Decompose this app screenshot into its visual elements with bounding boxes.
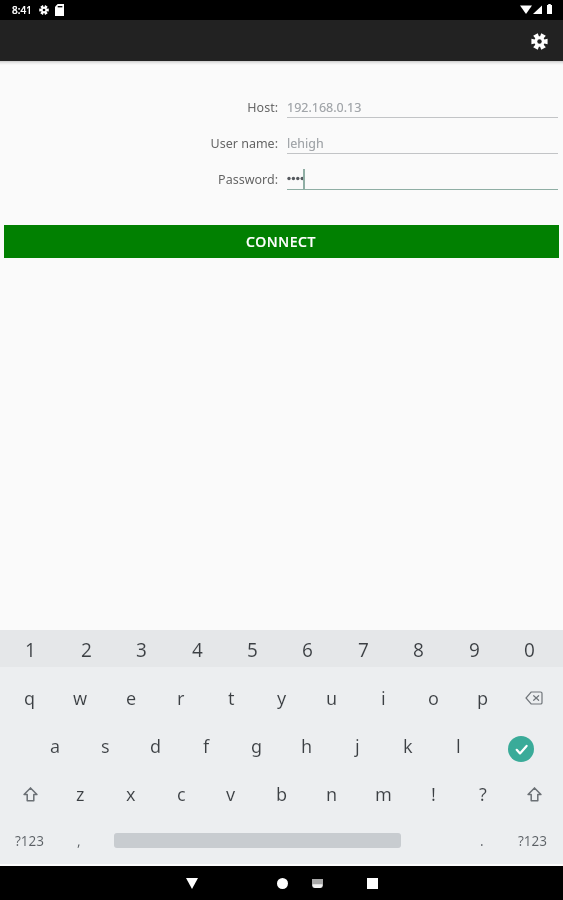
button[interactable]: 0	[502, 631, 557, 668]
button[interactable]: !	[408, 770, 458, 818]
button[interactable]: Back	[177, 866, 207, 900]
button[interactable]: j	[332, 722, 382, 770]
staticText: 9	[469, 637, 480, 663]
button[interactable]: Enter	[482, 725, 559, 773]
button[interactable]: y	[257, 674, 307, 722]
staticText: Password:	[0, 171, 278, 188]
staticText: ?123	[15, 832, 45, 850]
button[interactable]: ?123	[505, 818, 561, 864]
staticText: g	[251, 734, 263, 759]
button[interactable]: ?	[458, 770, 508, 818]
staticText: c	[177, 782, 186, 807]
button[interactable]: h	[282, 722, 332, 770]
button[interactable]: 5	[225, 631, 280, 668]
button[interactable]: k	[383, 722, 433, 770]
button[interactable]: u	[307, 674, 357, 722]
button[interactable]: a	[30, 722, 80, 770]
staticText: i	[381, 686, 386, 711]
staticText: ?	[479, 782, 487, 807]
staticText: h	[301, 734, 313, 759]
button[interactable]: p	[458, 674, 508, 722]
button[interactable]: z	[55, 770, 105, 818]
button[interactable]: Shift	[509, 770, 559, 818]
button[interactable]: 9	[447, 631, 502, 668]
staticText: f	[203, 734, 210, 759]
staticText: s	[101, 734, 110, 759]
staticText: r	[177, 686, 185, 711]
staticText: b	[276, 782, 288, 807]
button[interactable]: o	[408, 674, 458, 722]
button[interactable]: Space	[112, 817, 402, 863]
button[interactable]: Hide keyboard	[302, 866, 332, 900]
staticText: t	[228, 686, 235, 711]
staticText: ?123	[518, 832, 548, 850]
button[interactable]: Recents	[357, 866, 387, 900]
staticText: p	[477, 686, 489, 711]
button[interactable]: l	[433, 722, 483, 770]
staticText: 1	[25, 637, 36, 663]
staticText: z	[76, 782, 85, 807]
button[interactable]: t	[206, 674, 256, 722]
button[interactable]: CONNECT	[4, 225, 559, 258]
staticText: 3	[136, 637, 147, 663]
staticText: Host:	[0, 99, 278, 116]
button[interactable]: 8	[391, 631, 446, 668]
staticText: q	[24, 686, 36, 711]
staticText: e	[126, 686, 137, 711]
staticText: 4	[192, 637, 203, 663]
staticText: CONNECT	[246, 232, 317, 251]
staticText: a	[50, 734, 61, 759]
button[interactable]: ?123	[2, 818, 58, 864]
staticText: m	[375, 782, 392, 807]
staticText: d	[150, 734, 162, 759]
staticText: User name:	[0, 135, 278, 152]
staticText: 2	[81, 637, 92, 663]
staticText: 192.168.0.13	[287, 99, 362, 116]
button[interactable]: 7	[336, 631, 391, 668]
button[interactable]: 4	[170, 631, 225, 668]
button[interactable]: Shift	[5, 770, 55, 818]
button[interactable]: m	[358, 770, 408, 818]
staticText: .	[480, 832, 484, 850]
button[interactable]: Home	[267, 866, 297, 900]
button[interactable]: r	[156, 674, 206, 722]
staticText: k	[403, 734, 413, 759]
staticText: u	[326, 686, 338, 711]
staticText: n	[326, 782, 338, 807]
staticText: j	[355, 734, 360, 759]
button[interactable]: i	[358, 674, 408, 722]
button[interactable]: d	[131, 722, 181, 770]
button[interactable]: w	[55, 674, 105, 722]
button[interactable]: .	[462, 818, 502, 864]
button[interactable]: s	[80, 722, 130, 770]
button[interactable]: Backspace	[509, 674, 559, 722]
button[interactable]: c	[156, 770, 206, 818]
staticText: x	[126, 782, 136, 807]
staticText: 8:41	[12, 3, 32, 17]
staticText: 7	[358, 637, 369, 663]
button[interactable]: x	[106, 770, 156, 818]
staticText: 0	[524, 637, 535, 663]
staticText: l	[456, 734, 461, 759]
staticText: !	[431, 782, 436, 807]
button[interactable]: 2	[59, 631, 114, 668]
button[interactable]: e	[106, 674, 156, 722]
button[interactable]: 6	[280, 631, 335, 668]
staticText: v	[226, 782, 236, 807]
button[interactable]: b	[257, 770, 307, 818]
button[interactable]: q	[5, 674, 55, 722]
button[interactable]: n	[307, 770, 357, 818]
staticText: w	[73, 686, 88, 711]
button[interactable]: 1	[3, 631, 58, 668]
button[interactable]: g	[232, 722, 282, 770]
button[interactable]: f	[181, 722, 231, 770]
staticText: 6	[302, 637, 313, 663]
staticText: o	[428, 686, 439, 711]
button[interactable]: ,	[59, 818, 99, 864]
staticText: 8	[413, 637, 424, 663]
button[interactable]: Settings	[523, 25, 555, 57]
button[interactable]: v	[206, 770, 256, 818]
button[interactable]: 3	[114, 631, 169, 668]
staticText: ,	[77, 832, 81, 850]
staticText: y	[277, 686, 287, 711]
